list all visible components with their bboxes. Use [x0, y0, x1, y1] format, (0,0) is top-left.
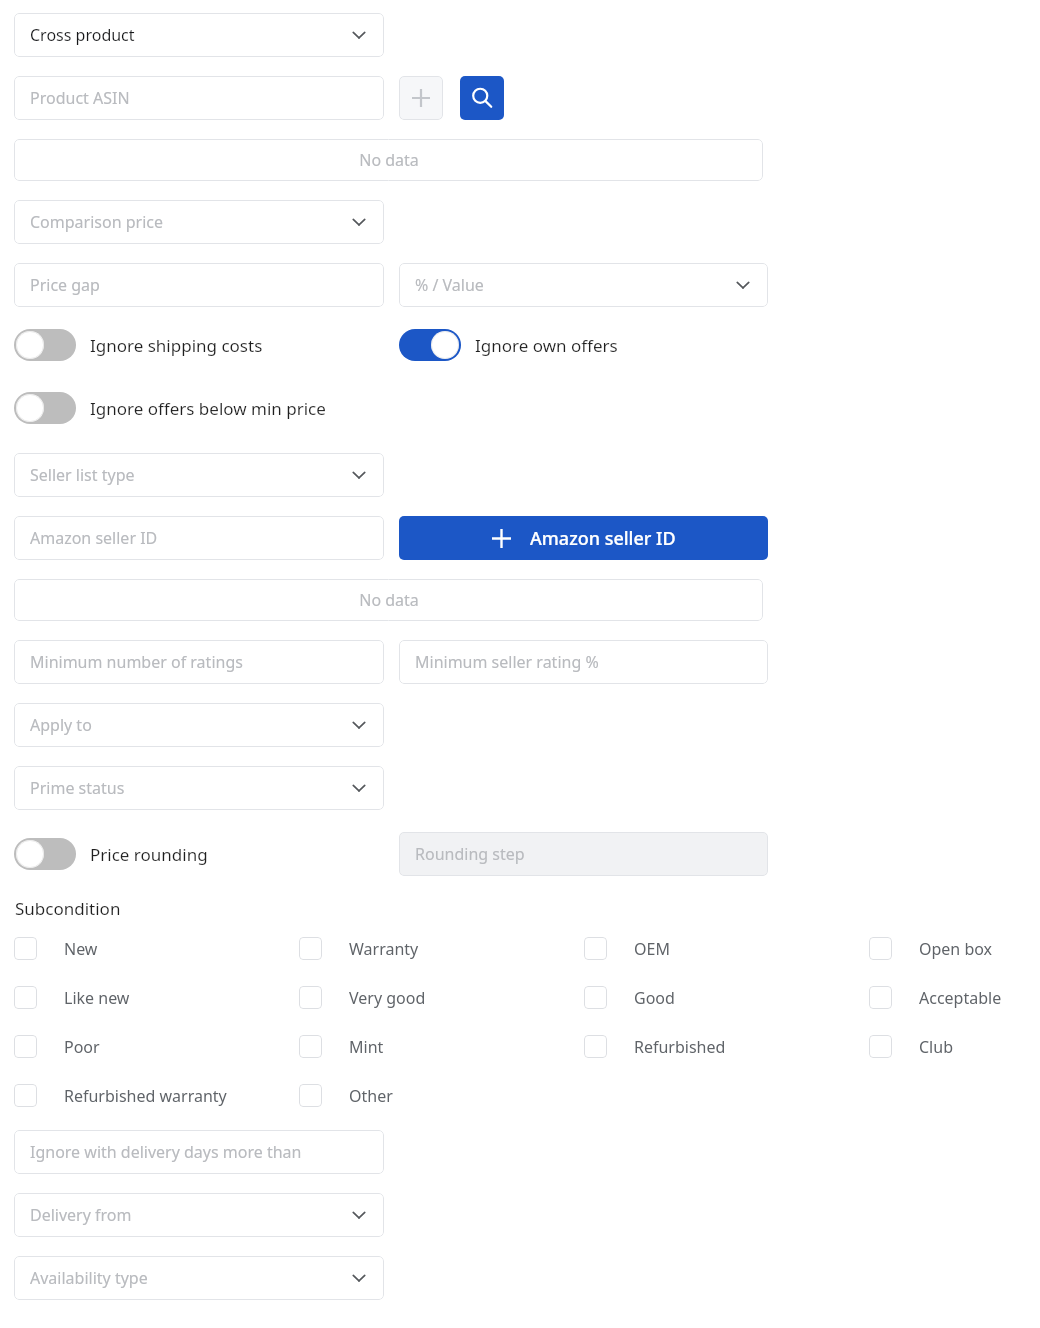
staticText: No data	[359, 589, 419, 611]
staticText: Availability type	[30, 1267, 148, 1289]
button[interactable]: Mint	[299, 1035, 384, 1058]
staticText: Comparison price	[30, 211, 163, 233]
staticText: Acceptable	[919, 987, 1002, 1009]
staticText: Very good	[349, 987, 426, 1009]
button[interactable]: Amazon seller ID	[14, 516, 384, 560]
staticText: Cross product	[30, 24, 135, 46]
button[interactable]: Rounding step	[399, 832, 768, 876]
staticText: Like new	[64, 987, 130, 1009]
staticText: Club	[919, 1036, 953, 1058]
button[interactable]: Refurbished warranty	[14, 1084, 227, 1107]
button[interactable]: Minimum number of ratings	[14, 640, 384, 684]
staticText: Open box	[919, 938, 993, 960]
button[interactable]: New	[14, 937, 98, 960]
button[interactable]: Seller list type	[14, 453, 384, 497]
button[interactable]: OEM	[584, 937, 670, 960]
button[interactable]: Search	[460, 76, 504, 120]
staticText: Minimum seller rating %	[415, 651, 599, 673]
button[interactable]: % / Value	[399, 263, 768, 307]
button[interactable]: Like new	[14, 986, 130, 1009]
staticText: Minimum number of ratings	[30, 651, 243, 673]
button[interactable]: Prime status	[14, 766, 384, 810]
staticText: % / Value	[415, 274, 484, 296]
button[interactable]: Comparison price	[14, 200, 384, 244]
button[interactable]: Price rounding	[14, 838, 208, 870]
staticText: Good	[634, 987, 675, 1009]
button[interactable]: Availability type	[14, 1256, 384, 1300]
button[interactable]: Ignore with delivery days more than	[14, 1130, 384, 1174]
button[interactable]: Very good	[299, 986, 426, 1009]
staticText: No data	[359, 149, 419, 171]
staticText: New	[64, 938, 98, 960]
button[interactable]: Product ASIN	[14, 76, 384, 120]
button[interactable]: Ignore offers below min price	[14, 392, 326, 424]
staticText: Apply to	[30, 714, 92, 736]
staticText: Price rounding	[90, 843, 208, 866]
staticText: Refurbished	[634, 1036, 726, 1058]
staticText: Delivery from	[30, 1204, 132, 1226]
staticText: Seller list type	[30, 464, 135, 486]
staticText: Amazon seller ID	[530, 526, 676, 551]
staticText: Ignore offers below min price	[90, 397, 326, 420]
button[interactable]: No data	[14, 139, 763, 181]
button[interactable]: Cross product	[14, 13, 384, 57]
button[interactable]: Open box	[869, 937, 993, 960]
staticText: Prime status	[30, 777, 125, 799]
button[interactable]: Ignore shipping costs	[14, 329, 263, 361]
staticText: Warranty	[349, 938, 419, 960]
staticText: Refurbished warranty	[64, 1085, 227, 1107]
button[interactable]: Delivery from	[14, 1193, 384, 1237]
button[interactable]: Apply to	[14, 703, 384, 747]
staticText: OEM	[634, 938, 670, 960]
button[interactable]: Other	[299, 1084, 393, 1107]
staticText: Mint	[349, 1036, 384, 1058]
staticText: Product ASIN	[30, 87, 130, 109]
staticText: Rounding step	[415, 843, 525, 865]
button[interactable]: Minimum seller rating %	[399, 640, 768, 684]
button[interactable]: Price gap	[14, 263, 384, 307]
button[interactable]: Acceptable	[869, 986, 1002, 1009]
button[interactable]: Refurbished	[584, 1035, 726, 1058]
button[interactable]: Warranty	[299, 937, 419, 960]
staticText: Ignore own offers	[475, 334, 618, 357]
staticText: Price gap	[30, 274, 100, 296]
button[interactable]: Poor	[14, 1035, 100, 1058]
button[interactable]: Good	[584, 986, 675, 1009]
button[interactable]: Ignore own offers	[399, 329, 618, 361]
staticText: Ignore shipping costs	[90, 334, 263, 357]
button[interactable]: Club	[869, 1035, 953, 1058]
staticText: Ignore with delivery days more than	[30, 1141, 302, 1163]
button[interactable]: Add	[399, 76, 443, 120]
button[interactable]: No data	[14, 579, 763, 621]
staticText: Amazon seller ID	[30, 527, 158, 549]
button[interactable]: Amazon seller ID	[399, 516, 768, 560]
staticText: Poor	[64, 1036, 100, 1058]
staticText: Subcondition	[15, 897, 121, 920]
staticText: Other	[349, 1085, 393, 1107]
